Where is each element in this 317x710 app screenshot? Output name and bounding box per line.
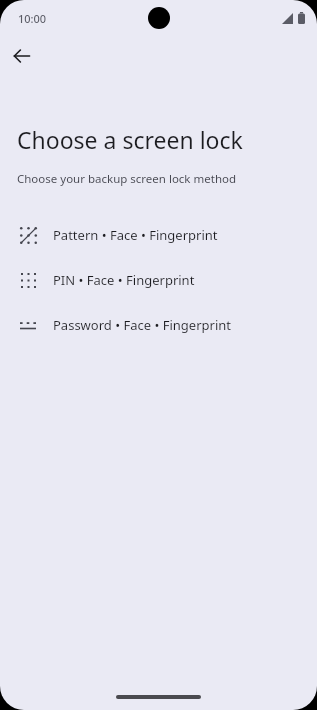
staticText: Pattern • Face • Fingerprint [53, 226, 218, 244]
staticText: Password • Face • Fingerprint [53, 316, 231, 334]
staticText: Choose your backup screen lock method [17, 171, 237, 187]
button[interactable]: Password • Face • Fingerprint [0, 302, 317, 347]
button[interactable]: PIN • Face • Fingerprint [0, 257, 317, 302]
button[interactable]: Back [6, 40, 38, 72]
staticText: Choose a screen lock [17, 124, 243, 155]
staticText: PIN • Face • Fingerprint [53, 271, 195, 289]
button[interactable]: Pattern • Face • Fingerprint [0, 212, 317, 257]
staticText: 10:00 [18, 11, 47, 26]
